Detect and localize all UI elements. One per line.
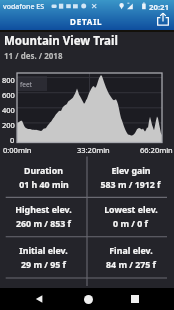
button[interactable]: Recents xyxy=(126,288,144,310)
staticText: Final elev. xyxy=(109,245,153,257)
staticText: feet xyxy=(20,80,32,89)
staticText: 01 h 40 min xyxy=(19,179,69,191)
staticText: 400 xyxy=(2,105,15,115)
staticText: 0:00min xyxy=(3,145,32,155)
staticText: vodafone ES xyxy=(3,2,45,12)
staticText: Mountain View Trail xyxy=(4,33,118,49)
staticText: 29 m / 95 f xyxy=(21,259,66,271)
staticText: 0 m / 0 f xyxy=(113,218,148,230)
button[interactable]: Duration xyxy=(0,157,87,198)
staticText: Duration xyxy=(24,165,63,177)
staticText: Initial elev. xyxy=(19,245,68,257)
staticText: 0 xyxy=(10,135,15,145)
button[interactable]: Home xyxy=(79,288,97,310)
staticText: 800 xyxy=(2,75,15,85)
staticText: 84 m / 275 f xyxy=(106,259,156,271)
button[interactable]: Back xyxy=(30,288,48,310)
staticText: 20:21 xyxy=(149,2,170,13)
staticText: Elev gain xyxy=(111,165,151,177)
staticText: 583 m / 1912 f xyxy=(100,179,161,191)
staticText: Lowest elev. xyxy=(104,204,158,216)
staticText: 200 xyxy=(2,120,15,130)
staticText: Highest elev. xyxy=(15,204,72,216)
staticText: 600 xyxy=(2,90,15,100)
button[interactable]: Lowest elev. xyxy=(87,197,174,236)
staticText: 11 / des. / 2018 xyxy=(4,50,63,61)
staticText: 66:20min xyxy=(140,145,173,155)
button[interactable]: Elev gain xyxy=(87,157,174,198)
button[interactable]: Share xyxy=(154,10,172,28)
button[interactable]: Highest elev. xyxy=(0,197,87,236)
staticText: 260 m / 853 f xyxy=(16,218,71,230)
button[interactable]: Final elev. xyxy=(87,237,174,278)
staticText: 33:20min xyxy=(77,145,110,155)
staticText: DETAIL xyxy=(70,16,103,27)
button[interactable]: Initial elev. xyxy=(0,237,87,278)
